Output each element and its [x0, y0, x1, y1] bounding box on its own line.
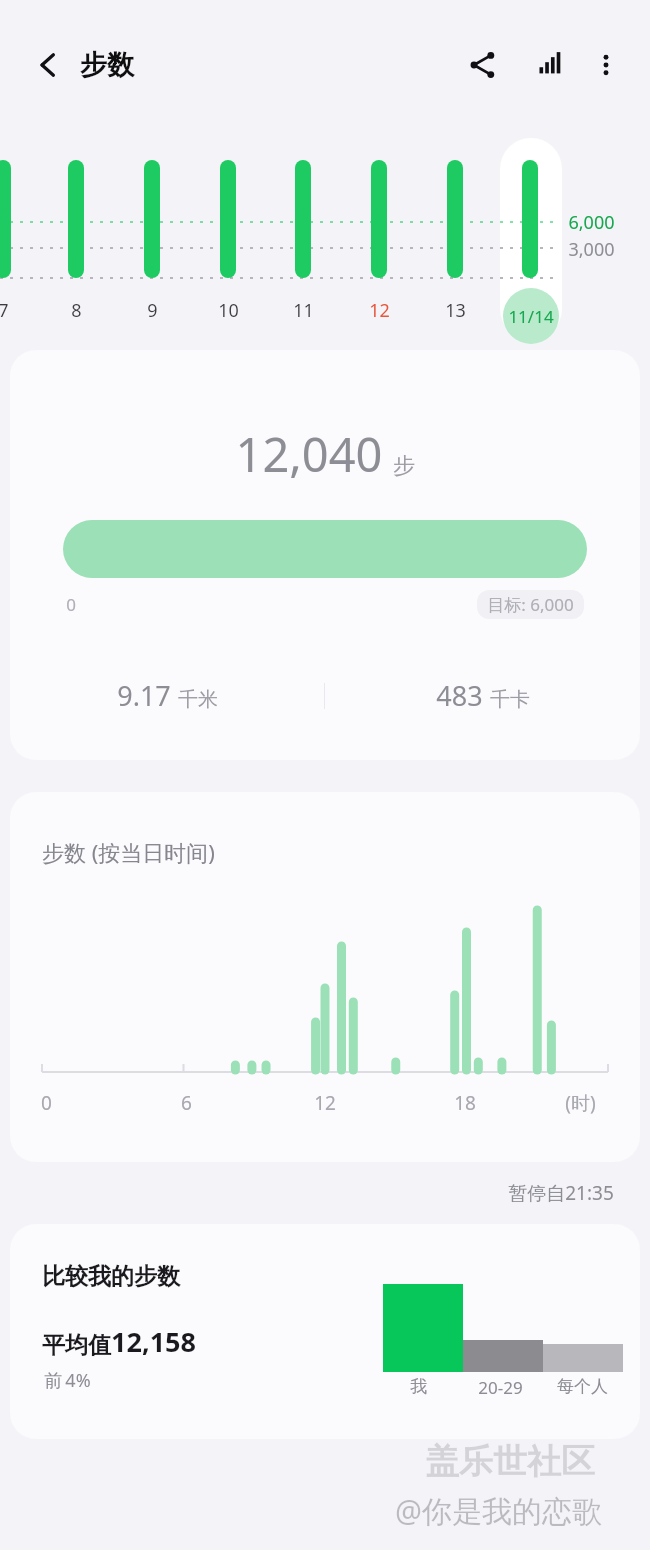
staticText: 9.17 [117, 677, 171, 714]
staticText: 前 [42, 1368, 65, 1393]
button[interactable]: 步数 (按当日时间) [10, 792, 640, 1162]
staticText: 13 [445, 298, 466, 323]
staticText: 0 [66, 593, 76, 616]
staticText: 9 [147, 298, 158, 323]
button[interactable]: More options [582, 41, 630, 89]
staticText: 比较我的步数 [42, 1262, 180, 1291]
staticText: 我 [410, 1376, 427, 1397]
staticText: 11/14 [508, 305, 554, 328]
staticText: 12,158 [111, 1323, 196, 1360]
staticText: 12 [369, 298, 390, 323]
staticText: 18 [454, 1090, 476, 1116]
staticText: 0 [41, 1090, 52, 1116]
staticText: 目标: 6,000 [487, 593, 574, 616]
staticText: 每个人 [557, 1376, 608, 1397]
staticText: 6 [181, 1090, 192, 1116]
staticText: 3,000 [568, 237, 615, 262]
staticText: 千米 [178, 687, 218, 712]
staticText: 4% [65, 1368, 91, 1393]
staticText: @你是我的恋歌 [395, 1490, 602, 1531]
staticText: 10 [218, 298, 239, 323]
staticText: 步数 [80, 48, 134, 82]
staticText: 6,000 [568, 210, 615, 235]
staticText: 暂停自21:35 [508, 1180, 614, 1206]
staticText: 483 [436, 677, 483, 714]
button[interactable]: Back [24, 41, 72, 89]
staticText: 步数 (按当日时间) [42, 837, 215, 867]
staticText: 12,040 [235, 422, 383, 486]
staticText: (时) [565, 1090, 596, 1116]
staticText: 盖乐世社区 [425, 1440, 595, 1483]
staticText: 千卡 [490, 687, 530, 712]
staticText: 11 [293, 298, 314, 323]
button[interactable]: Chart [522, 38, 576, 92]
button[interactable]: 12,040 [10, 350, 640, 760]
staticText: 平均值 [42, 1331, 111, 1360]
staticText: 8 [71, 298, 82, 323]
staticText: 7 [0, 298, 9, 323]
button[interactable]: Share [456, 38, 510, 92]
button[interactable]: 比较我的步数 [10, 1224, 640, 1439]
staticText: 步 [393, 452, 415, 480]
staticText: 12 [314, 1090, 336, 1116]
button[interactable] [500, 138, 562, 340]
staticText: 20-29 [478, 1376, 523, 1399]
